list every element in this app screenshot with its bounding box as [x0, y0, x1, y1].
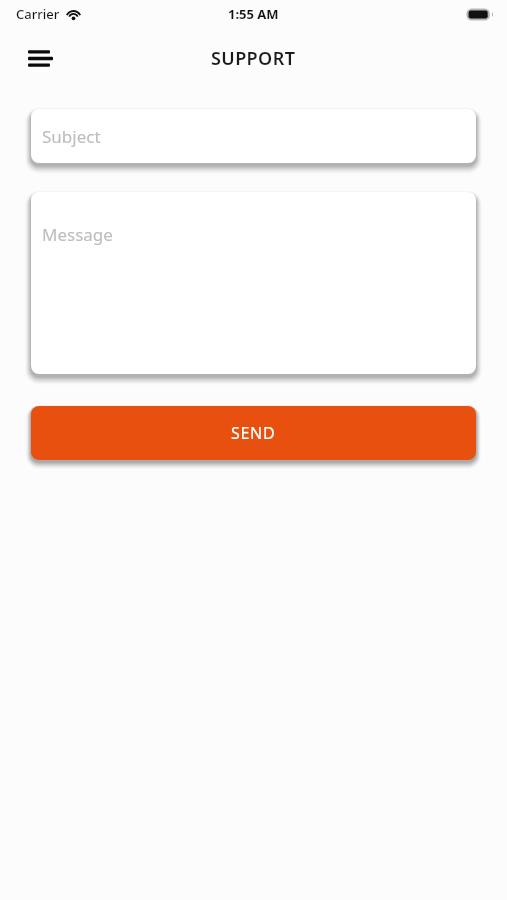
button[interactable]: Open navigation menu: [20, 38, 60, 78]
staticText: SUPPORT: [211, 46, 296, 71]
button[interactable]: Message: [31, 192, 476, 374]
staticText: Subject: [42, 125, 101, 148]
staticText: Message: [42, 223, 113, 246]
staticText: Carrier: [16, 5, 60, 23]
staticText: 1:55 AM: [228, 5, 279, 23]
button[interactable]: Subject: [31, 109, 476, 163]
staticText: SEND: [231, 422, 276, 444]
button[interactable]: SEND: [31, 406, 476, 460]
